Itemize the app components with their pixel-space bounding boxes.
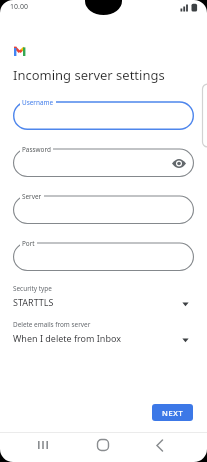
staticText: Password <box>22 145 51 154</box>
button[interactable]: Password <box>13 141 194 177</box>
button[interactable]: Delete emails from server <box>0 319 207 350</box>
staticText: Username <box>22 98 54 107</box>
button[interactable]: Security type <box>0 283 207 314</box>
staticText: Delete emails from server <box>13 320 91 329</box>
button[interactable]: Server <box>13 188 194 224</box>
button[interactable]: Port <box>13 235 194 271</box>
staticText: When I delete from Inbox <box>13 332 121 344</box>
button[interactable] <box>96 438 111 453</box>
button[interactable]: NEXT <box>152 404 193 421</box>
staticText: Incoming server settings <box>13 66 165 84</box>
staticText: 10.00 <box>10 2 28 12</box>
staticText: STARTTLS <box>13 296 54 308</box>
staticText: Port <box>22 239 35 248</box>
staticText: Server <box>22 192 42 201</box>
staticText: NEXT <box>162 408 184 418</box>
button[interactable] <box>153 438 167 453</box>
staticText: Security type <box>13 284 52 293</box>
button[interactable] <box>36 438 52 452</box>
button[interactable]: Username <box>13 94 194 130</box>
